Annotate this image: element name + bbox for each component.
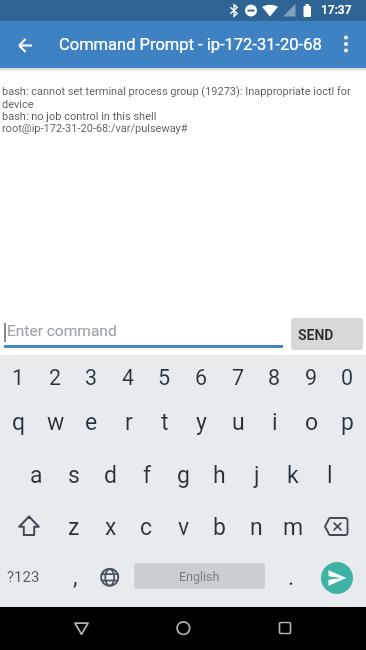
staticText: d [104, 462, 117, 489]
staticText: o [305, 409, 319, 436]
staticText: SEND [298, 327, 334, 343]
button[interactable]: k [274, 449, 311, 501]
button[interactable]: l [311, 449, 348, 501]
button[interactable]: 1 [0, 356, 37, 398]
button[interactable]: b [201, 501, 238, 553]
button[interactable] [2, 23, 46, 67]
button[interactable]: s [55, 449, 92, 501]
staticText: c [140, 514, 153, 541]
button[interactable]: t [146, 397, 183, 447]
button[interactable]: , [55, 551, 95, 603]
button[interactable]: ?123 [0, 551, 46, 603]
staticText: x [105, 514, 117, 541]
button[interactable]: e [73, 397, 110, 447]
staticText: bash: cannot set terminal process group … [2, 85, 351, 135]
button[interactable]: 5 [146, 356, 183, 398]
button[interactable]: o [293, 397, 330, 447]
staticText: 7 [232, 365, 245, 390]
button[interactable]: w [37, 397, 74, 447]
button[interactable]: . [271, 551, 311, 603]
staticText: 8 [268, 365, 281, 390]
button[interactable] [263, 607, 307, 650]
button[interactable]: 7 [220, 356, 257, 398]
staticText: e [85, 409, 98, 436]
button[interactable]: c [128, 501, 165, 553]
staticText: s [68, 462, 80, 489]
button[interactable]: 4 [110, 356, 147, 398]
staticText: 17:37 [321, 3, 352, 17]
button[interactable]: j [238, 449, 275, 501]
staticText: t [161, 409, 169, 436]
button[interactable]: z [55, 501, 92, 553]
button[interactable]: 6 [183, 356, 220, 398]
button[interactable]: 2 [37, 356, 74, 398]
staticText: a [30, 462, 43, 489]
staticText: g [177, 462, 190, 489]
staticText: Command Prompt - ip-172-31-20-68 [59, 35, 322, 54]
staticText: 9 [305, 365, 318, 390]
staticText: q [12, 409, 26, 436]
staticText: w [47, 409, 65, 436]
staticText: 1 [12, 365, 25, 390]
staticText: 3 [85, 365, 98, 390]
staticText: y [196, 409, 207, 436]
staticText: i [272, 409, 278, 436]
staticText: English [179, 569, 220, 584]
staticText: j [254, 462, 260, 489]
button[interactable]: n [238, 501, 275, 553]
button[interactable]: u [220, 397, 257, 447]
button[interactable]: i [256, 397, 293, 447]
button[interactable] [328, 23, 364, 67]
button[interactable] [321, 562, 353, 594]
button[interactable] [311, 500, 366, 551]
button[interactable]: v [165, 501, 202, 553]
staticText: f [143, 462, 151, 489]
staticText: ?123 [7, 568, 40, 586]
button[interactable]: 3 [73, 356, 110, 398]
staticText: 4 [122, 365, 135, 390]
staticText: , [73, 564, 78, 591]
button[interactable]: p [329, 397, 366, 447]
staticText: 0 [341, 365, 354, 390]
staticText: h [213, 462, 226, 489]
button[interactable]: 8 [256, 356, 293, 398]
staticText: . [288, 564, 295, 591]
button[interactable]: g [165, 449, 202, 501]
staticText: z [68, 514, 80, 541]
button[interactable] [161, 607, 205, 650]
staticText: Enter command [7, 322, 117, 340]
button[interactable]: 0 [329, 356, 366, 398]
button[interactable]: r [110, 397, 147, 447]
button[interactable]: d [92, 449, 129, 501]
button[interactable]: x [92, 501, 129, 553]
staticText: r [125, 409, 133, 436]
button[interactable] [59, 607, 103, 650]
button[interactable]: h [201, 449, 238, 501]
button[interactable]: y [183, 397, 220, 447]
staticText: l [327, 462, 333, 489]
staticText: n [250, 514, 263, 541]
button[interactable] [92, 551, 129, 603]
staticText: m [283, 514, 304, 541]
button[interactable]: SEND [291, 318, 363, 350]
button[interactable]: English [134, 563, 265, 589]
button[interactable] [0, 500, 55, 551]
staticText: 2 [49, 365, 62, 390]
staticText: p [341, 409, 354, 436]
button[interactable]: Enter command [0, 315, 287, 350]
staticText: 6 [195, 365, 208, 390]
button[interactable]: q [0, 397, 37, 447]
staticText: 5 [158, 365, 171, 390]
staticText: k [287, 462, 299, 489]
staticText: u [232, 409, 245, 436]
button[interactable]: f [128, 449, 165, 501]
button[interactable]: m [275, 501, 312, 553]
staticText: v [178, 514, 190, 541]
button[interactable]: 9 [293, 356, 330, 398]
staticText: b [213, 514, 226, 541]
button[interactable]: a [18, 449, 55, 501]
